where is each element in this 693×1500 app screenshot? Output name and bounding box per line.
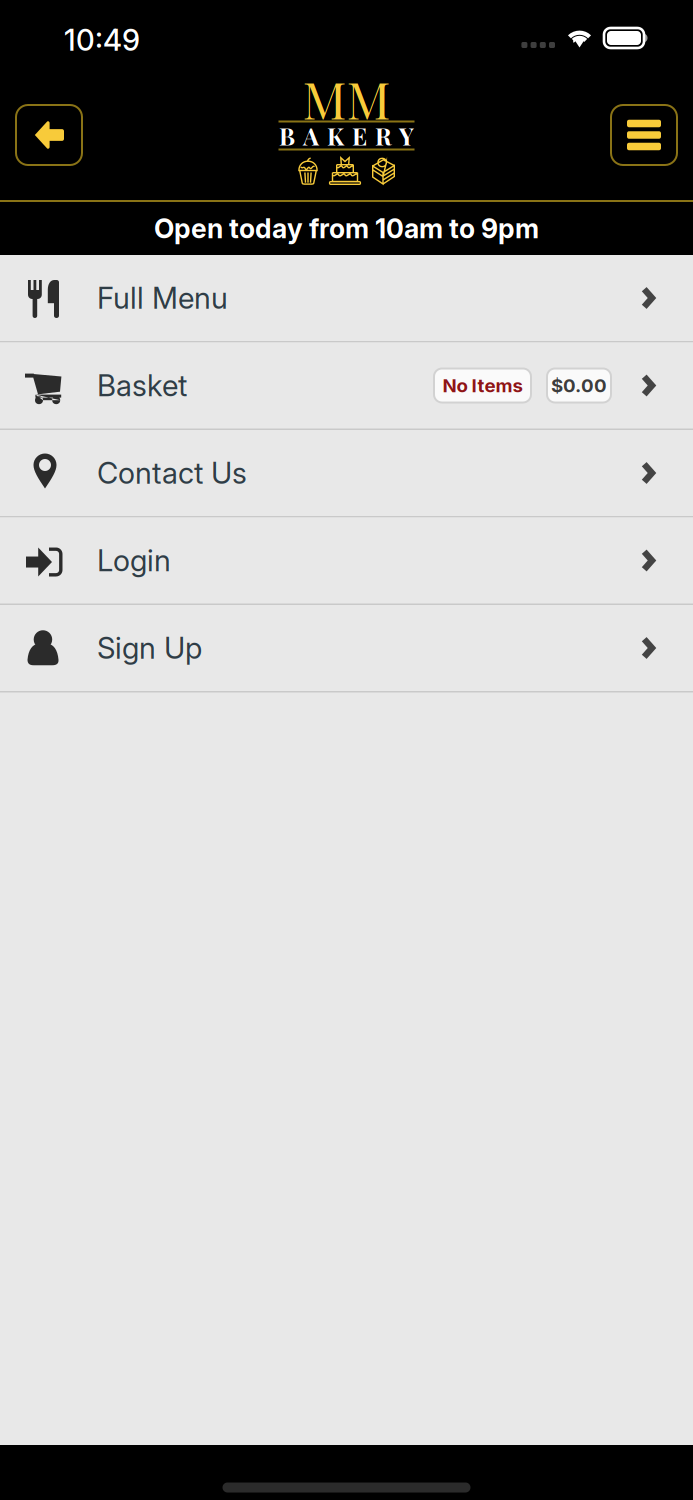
staticText: MM [302,65,390,132]
button[interactable]: Menu [611,105,677,165]
button[interactable]: Contact Us [0,430,693,516]
button[interactable]: Basket [0,342,693,428]
staticText: Contact Us [97,455,247,491]
staticText: Full Menu [97,280,228,316]
staticText: No Items [442,374,522,397]
button[interactable]: Back [16,105,82,165]
button[interactable]: Sign Up [0,605,693,691]
button[interactable]: Login [0,517,693,603]
staticText: Basket [97,368,187,403]
staticText: $0.00 [551,374,607,397]
staticText: Login [97,543,171,578]
button[interactable]: Full Menu [0,255,693,341]
staticText: Sign Up [97,630,202,666]
staticText: BAKERY [279,119,414,151]
staticText: 10:49 [64,22,140,58]
staticText: Open today from 10am to 9pm [154,212,539,245]
